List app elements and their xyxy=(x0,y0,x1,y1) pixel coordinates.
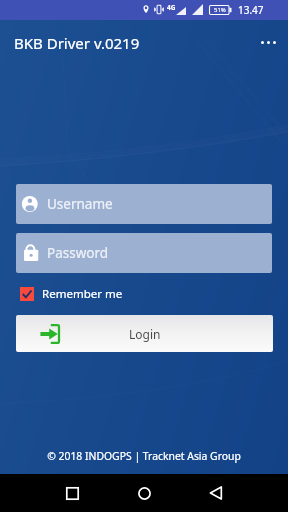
button[interactable]: Login xyxy=(16,315,273,352)
staticText: 13.47 xyxy=(238,3,264,17)
button[interactable]: Recents xyxy=(53,474,91,512)
staticText: 4G xyxy=(167,3,176,12)
staticText: Login xyxy=(129,326,161,342)
staticText: © 2018 INDOGPS | Tracknet Asia Group xyxy=(0,449,288,463)
staticText: Remember me xyxy=(42,286,123,302)
button[interactable]: Password xyxy=(16,233,272,273)
staticText: 51% xyxy=(214,6,226,14)
button[interactable]: Back xyxy=(197,474,235,512)
staticText: BKB Driver v.0219 xyxy=(14,33,140,53)
button[interactable]: Home xyxy=(125,474,163,512)
button[interactable]: Remember me xyxy=(20,286,123,302)
staticText: Username xyxy=(47,195,113,213)
button[interactable]: More options xyxy=(252,26,284,58)
staticText: Password xyxy=(47,244,109,262)
button[interactable]: Username xyxy=(16,184,272,224)
